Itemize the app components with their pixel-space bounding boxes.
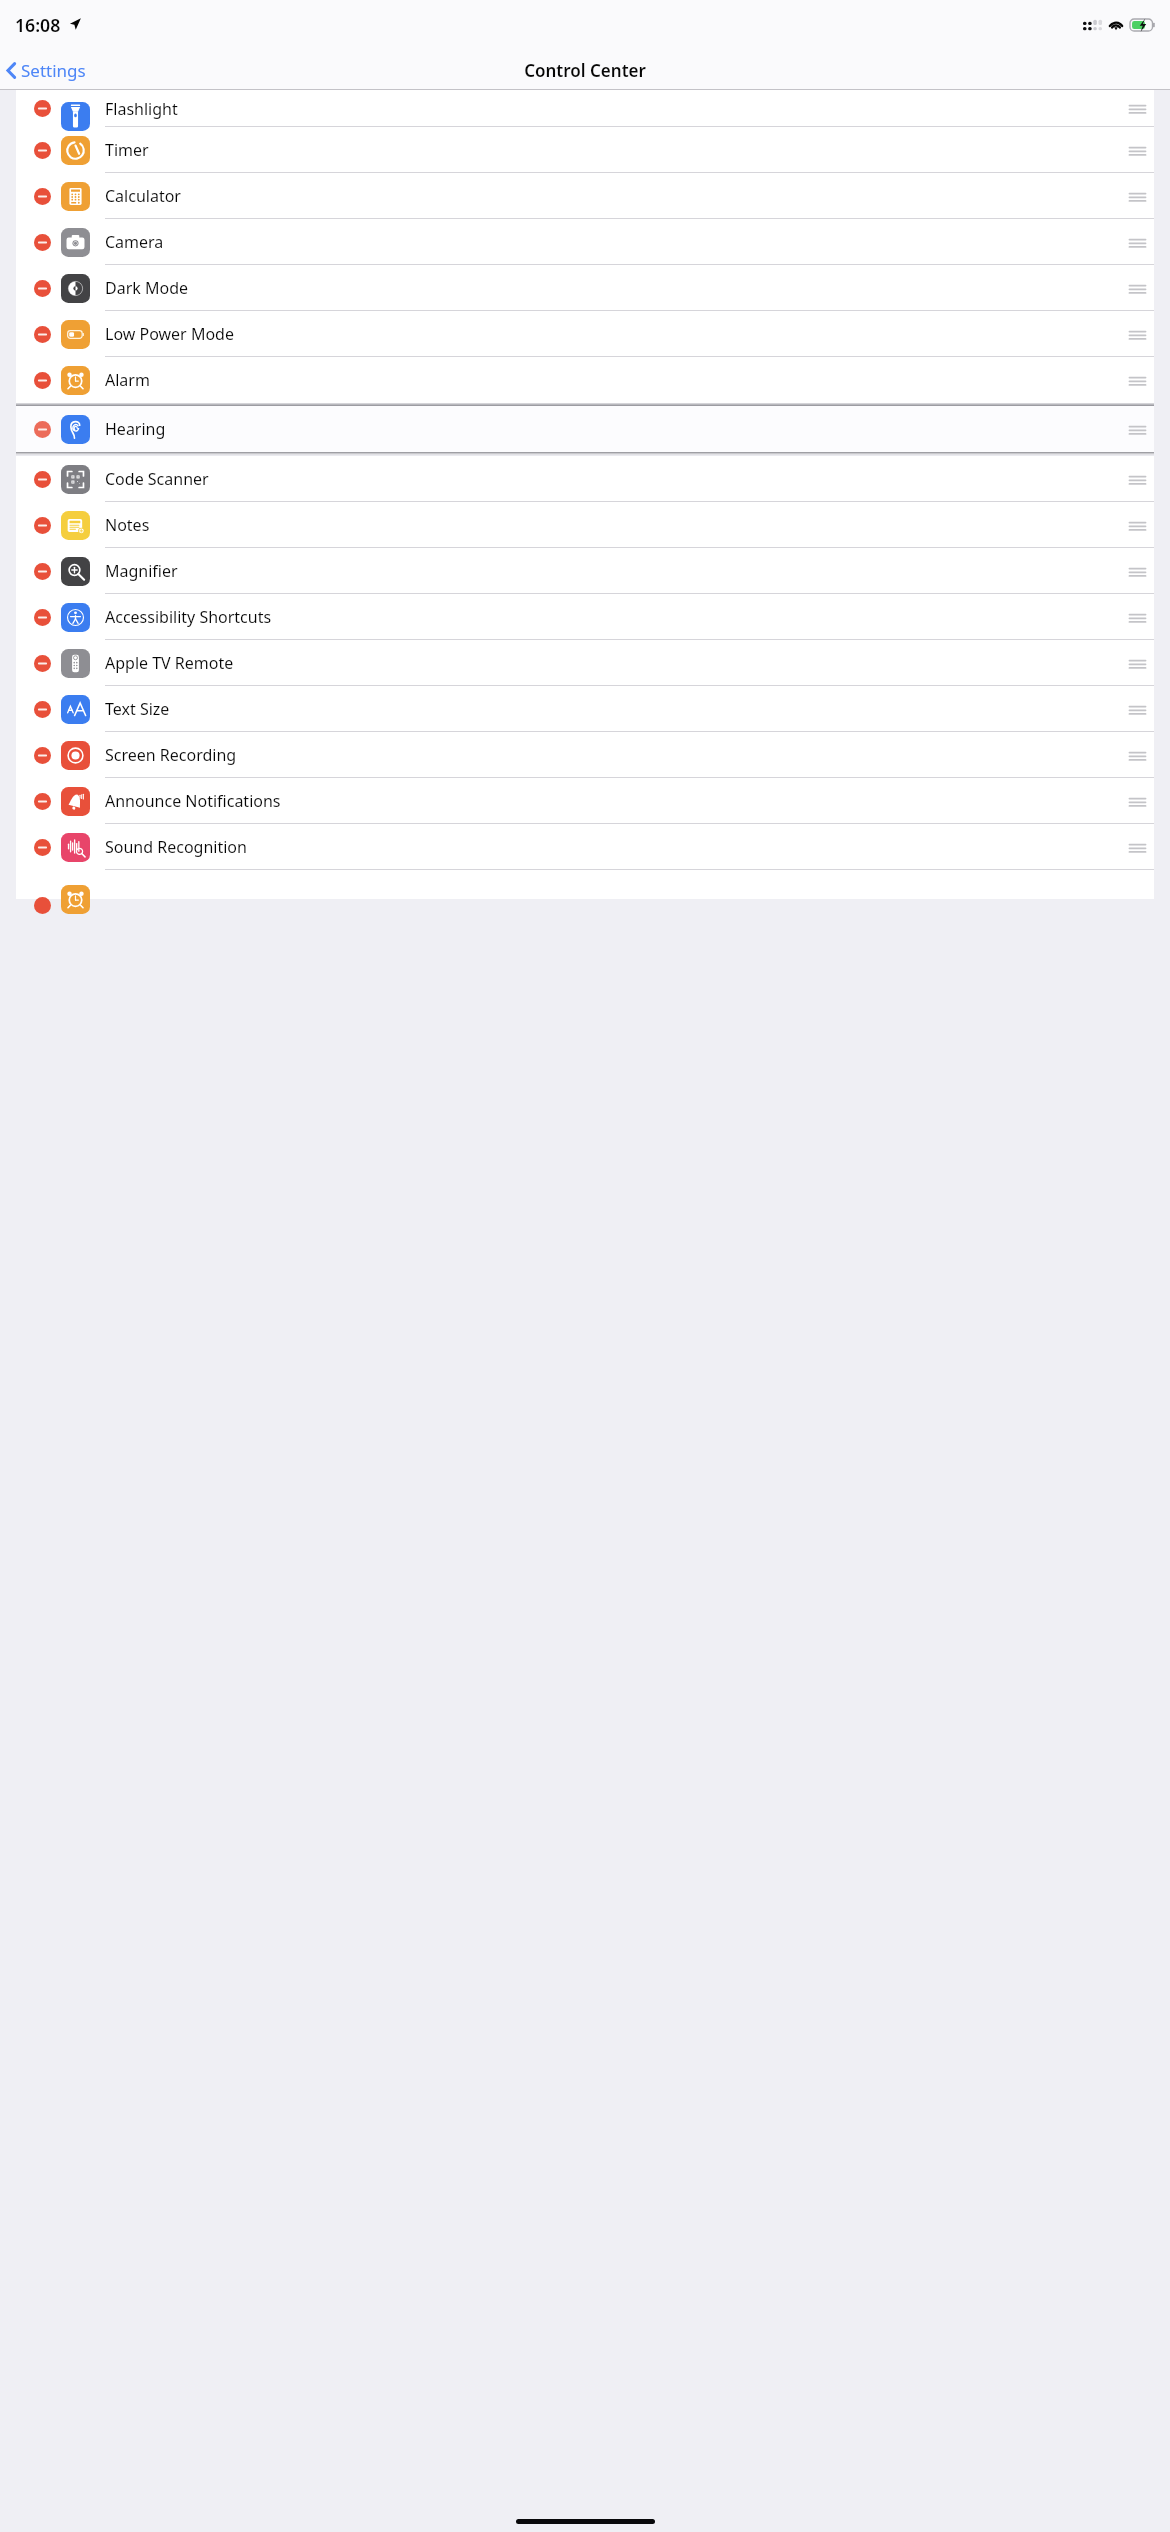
button[interactable]: Settings <box>0 56 90 85</box>
staticText: 16:08 <box>15 13 61 37</box>
button[interactable]: Remove Flashlight <box>16 90 1154 127</box>
button[interactable]: Reorder Text Size <box>1128 702 1147 717</box>
button[interactable]: Reorder Sound Recognition <box>1128 840 1147 855</box>
button[interactable]: Remove Dark Mode <box>34 280 51 297</box>
button[interactable]: Remove Hearing <box>34 421 51 438</box>
button[interactable]: Remove Flashlight <box>34 100 51 117</box>
staticText: Dark Mode <box>105 277 189 299</box>
button[interactable]: Reorder Code Scanner <box>1128 472 1147 487</box>
button[interactable]: Remove Timer <box>16 127 1154 173</box>
button[interactable]: Reorder Hearing <box>1128 422 1147 437</box>
staticText: Accessibility Shortcuts <box>105 606 272 628</box>
button[interactable]: Remove Apple TV Remote <box>34 655 51 672</box>
button[interactable]: Remove Accessibility Shortcuts <box>34 609 51 626</box>
button[interactable]: Remove Text Size <box>34 701 51 718</box>
button[interactable]: Reorder Dark Mode <box>1128 281 1147 296</box>
button[interactable]: Reorder Low Power Mode <box>1128 327 1147 342</box>
button[interactable]: Reorder Notes <box>1128 518 1147 533</box>
button[interactable]: Remove Sound Recognition <box>34 839 51 856</box>
button[interactable]: Remove Magnifier <box>16 548 1154 594</box>
button[interactable]: Reorder Flashlight <box>1128 101 1147 116</box>
button[interactable]: Remove Camera <box>34 234 51 251</box>
button[interactable]: Remove Low Power Mode <box>16 311 1154 357</box>
button[interactable]: Remove Low Power Mode <box>34 326 51 343</box>
staticText: Notes <box>105 514 150 536</box>
staticText: Text Size <box>105 698 170 720</box>
staticText: Alarm <box>105 369 150 391</box>
staticText: Apple TV Remote <box>105 652 234 674</box>
button[interactable] <box>16 870 1154 899</box>
button[interactable]: Reorder Accessibility Shortcuts <box>1128 610 1147 625</box>
button[interactable]: Reorder Announce Notifications <box>1128 794 1147 809</box>
staticText: Timer <box>105 139 149 161</box>
button[interactable]: Remove Code Scanner <box>34 471 51 488</box>
staticText: Control Center <box>524 59 646 82</box>
staticText: Calculator <box>105 185 181 207</box>
button[interactable]: Remove Calculator <box>16 173 1154 219</box>
button[interactable]: Reorder Timer <box>1128 143 1147 158</box>
button[interactable]: Reorder Screen Recording <box>1128 748 1147 763</box>
staticText: Code Scanner <box>105 468 209 490</box>
button[interactable]: Reorder Alarm <box>1128 373 1147 388</box>
button[interactable]: Remove Timer <box>34 142 51 159</box>
button[interactable]: Remove Notes <box>34 517 51 534</box>
button[interactable]: Remove Code Scanner <box>16 456 1154 502</box>
button[interactable]: Remove Alarm <box>16 357 1154 403</box>
button[interactable]: Remove Dark Mode <box>16 265 1154 311</box>
staticText: Camera <box>105 231 164 253</box>
button[interactable]: Remove Screen Recording <box>16 732 1154 778</box>
button[interactable]: Remove Text Size <box>16 686 1154 732</box>
button[interactable]: Reorder Calculator <box>1128 189 1147 204</box>
button[interactable]: Reorder Magnifier <box>1128 564 1147 579</box>
staticText: Flashlight <box>105 98 178 120</box>
button[interactable]: Remove Notes <box>16 502 1154 548</box>
button[interactable]: Remove Apple TV Remote <box>16 640 1154 686</box>
button[interactable]: Remove Calculator <box>34 188 51 205</box>
button[interactable]: Reorder Apple TV Remote <box>1128 656 1147 671</box>
staticText: Sound Recognition <box>105 836 247 858</box>
staticText: Magnifier <box>105 560 178 582</box>
staticText: Settings <box>21 59 86 82</box>
button[interactable]: Remove Announce Notifications <box>16 778 1154 824</box>
button[interactable]: Remove Hearing <box>16 406 1154 452</box>
staticText: Announce Notifications <box>105 790 281 812</box>
button[interactable]: Remove Magnifier <box>34 563 51 580</box>
staticText: Screen Recording <box>105 744 237 766</box>
staticText: Hearing <box>105 418 166 440</box>
button[interactable]: Remove Sound Recognition <box>16 824 1154 870</box>
button[interactable]: Remove Screen Recording <box>34 747 51 764</box>
button[interactable]: Remove Camera <box>16 219 1154 265</box>
button[interactable]: Remove Announce Notifications <box>34 793 51 810</box>
staticText: Low Power Mode <box>105 323 234 345</box>
button[interactable]: Reorder Camera <box>1128 235 1147 250</box>
button[interactable]: Remove Alarm <box>34 372 51 389</box>
button[interactable]: Remove Accessibility Shortcuts <box>16 594 1154 640</box>
